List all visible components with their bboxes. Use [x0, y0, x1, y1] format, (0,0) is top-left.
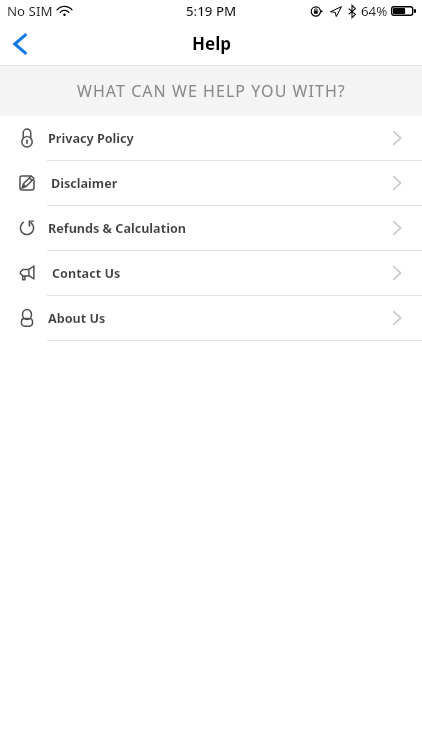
staticText: WHAT CAN WE HELP YOU WITH?	[77, 80, 346, 102]
staticText: No SIM	[7, 2, 53, 20]
staticText: Disclaimer	[51, 175, 118, 192]
button[interactable]: Refunds & Calculation	[0, 206, 422, 250]
staticText: 5:19 PM	[186, 2, 237, 20]
button[interactable]: Back	[3, 27, 37, 61]
staticText: Contact Us	[52, 265, 121, 282]
staticText: About Us	[48, 310, 106, 327]
button[interactable]: Disclaimer	[0, 161, 422, 205]
staticText: Refunds & Calculation	[48, 220, 186, 237]
staticText: Help	[192, 32, 231, 55]
button[interactable]: Privacy Policy	[0, 116, 422, 160]
staticText: Privacy Policy	[48, 130, 134, 147]
button[interactable]: About Us	[0, 296, 422, 340]
staticText: 64%	[361, 2, 388, 20]
button[interactable]: Contact Us	[0, 251, 422, 295]
